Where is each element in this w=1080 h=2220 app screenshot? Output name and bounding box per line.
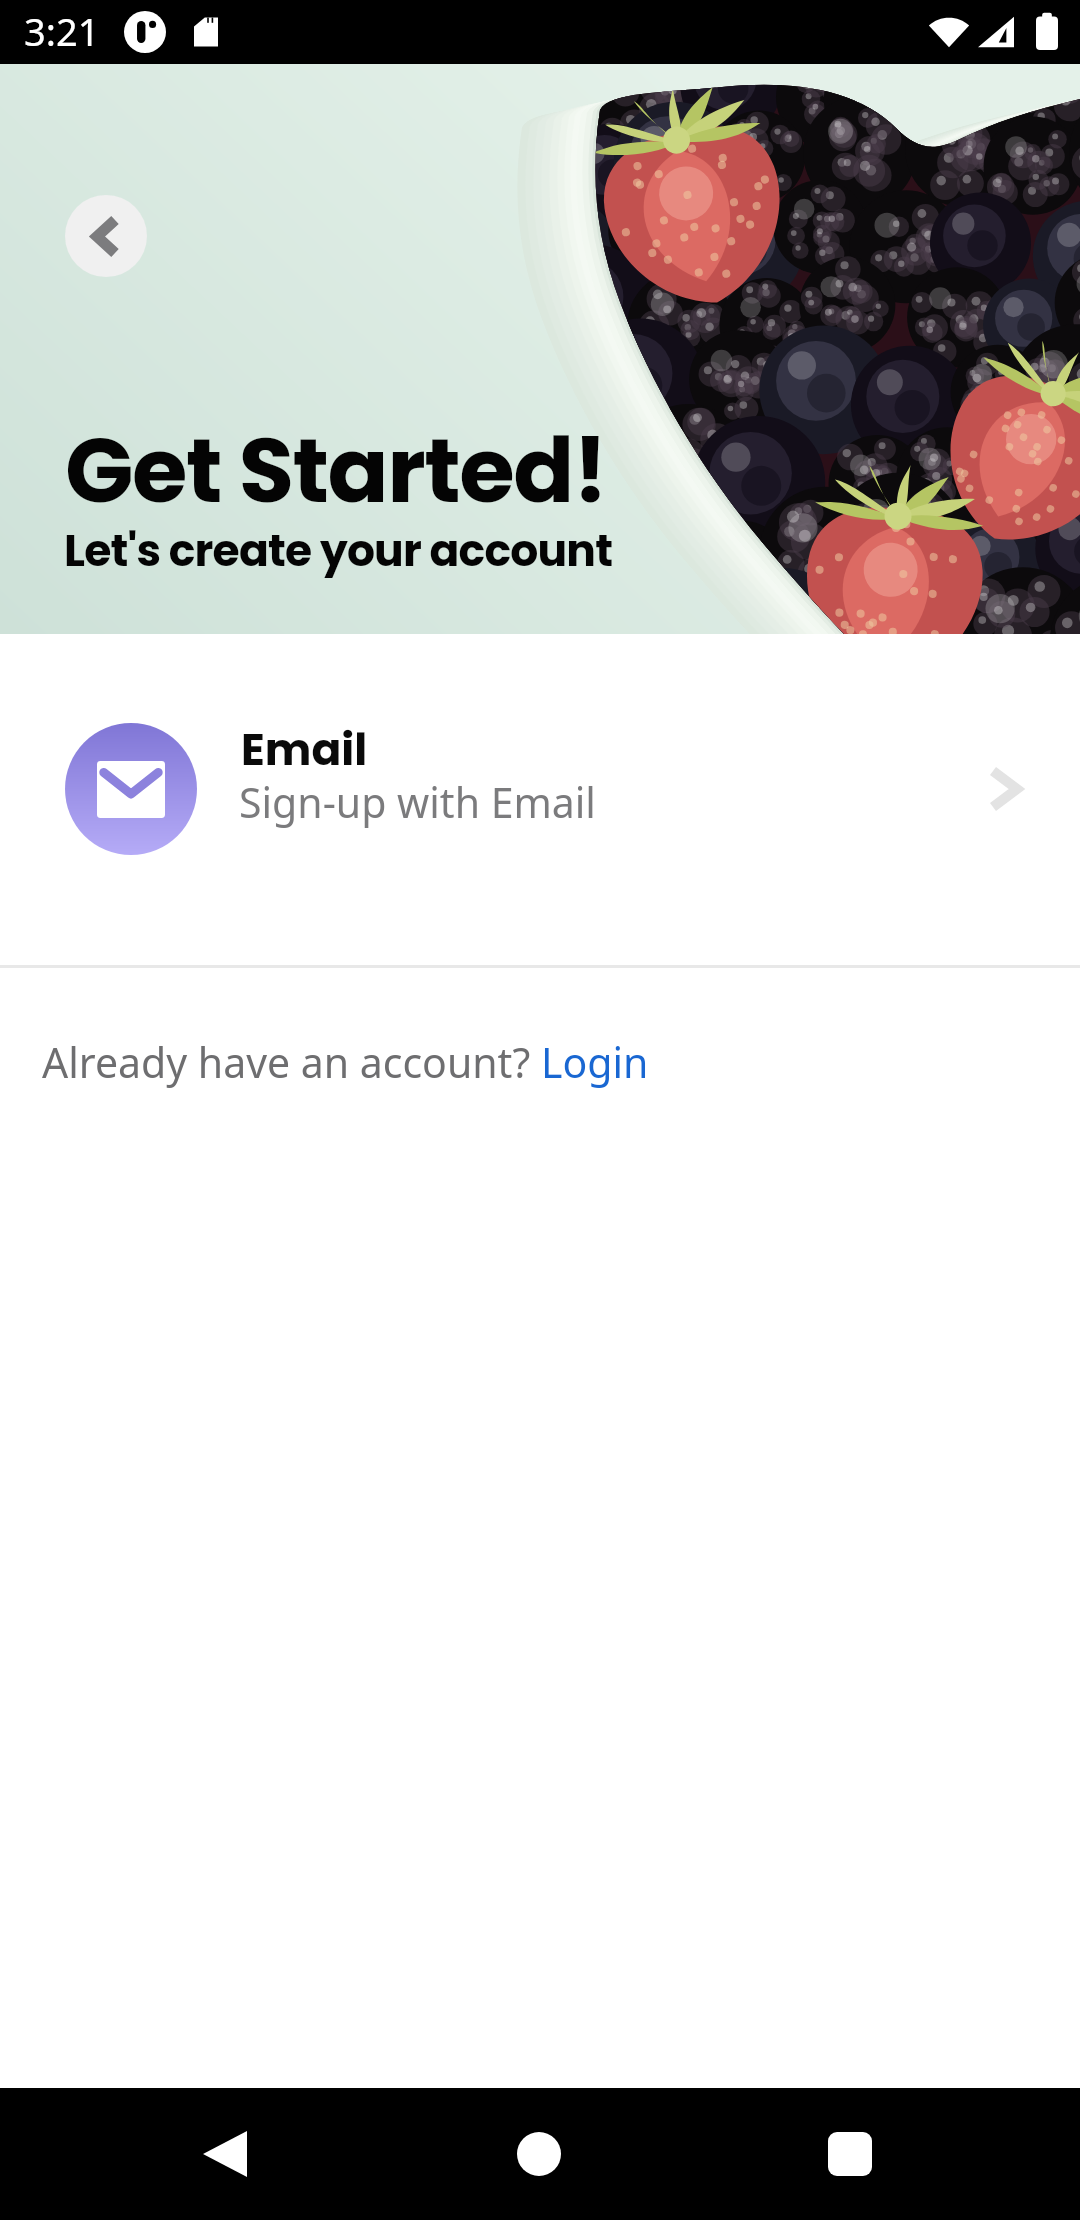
staticText: Already have an account?: [42, 1034, 541, 1090]
button[interactable]: Email: [0, 634, 1080, 965]
staticText: 3:21: [24, 5, 100, 57]
staticText: Login: [541, 1034, 649, 1090]
button[interactable]: Home: [491, 2106, 587, 2202]
button[interactable]: Already have an account?: [42, 1034, 649, 1090]
staticText: Sign-up with Email: [239, 774, 596, 830]
staticText: Get Started!: [65, 408, 607, 534]
staticText: Let's create your account: [64, 520, 613, 582]
staticText: Email: [241, 719, 368, 781]
button[interactable]: Recent apps: [802, 2106, 898, 2202]
other: Open: [988, 766, 1022, 812]
button[interactable]: Back: [65, 195, 147, 277]
button[interactable]: Back: [177, 2106, 273, 2202]
